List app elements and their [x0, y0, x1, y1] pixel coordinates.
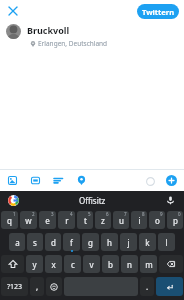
staticText: .	[146, 281, 149, 292]
button[interactable]: v	[83, 255, 100, 273]
staticText: 2	[32, 211, 35, 217]
staticText: 8	[142, 211, 145, 217]
button[interactable]: e	[39, 211, 56, 229]
staticText: g	[88, 237, 93, 248]
button[interactable]: q	[1, 211, 18, 229]
button[interactable]: n	[121, 255, 138, 273]
staticText: z	[101, 215, 105, 226]
staticText: Bruckvoll	[27, 24, 70, 36]
staticText: a	[15, 237, 20, 248]
staticText: v	[89, 259, 94, 270]
button[interactable]: h	[101, 233, 118, 251]
button[interactable]: Google	[7, 194, 19, 206]
staticText: 9	[160, 211, 163, 217]
button[interactable]: ,	[30, 277, 44, 296]
staticText: e	[45, 215, 50, 226]
staticText: f	[70, 237, 73, 248]
staticText: j	[127, 237, 130, 248]
button[interactable]: Add GIF	[29, 174, 42, 187]
button[interactable]: c	[64, 255, 81, 273]
staticText: q	[7, 215, 12, 226]
staticText: o	[155, 215, 160, 226]
staticText: ?123	[7, 282, 23, 292]
staticText: ,	[36, 281, 39, 292]
button[interactable]: Add photo	[6, 174, 19, 187]
staticText: s	[33, 237, 37, 248]
staticText: t	[84, 215, 87, 226]
button[interactable]: Backspace	[159, 255, 183, 273]
button[interactable]: y	[26, 255, 43, 273]
button[interactable]: l	[158, 233, 175, 251]
button[interactable]: Character count	[144, 175, 156, 187]
staticText: k	[145, 237, 150, 248]
button[interactable]: d	[45, 233, 61, 251]
button[interactable]: w	[20, 211, 37, 229]
staticText: Erlangen, Deutschland	[38, 39, 108, 48]
button[interactable]: Twittern	[137, 4, 179, 19]
button[interactable]: Voice input	[164, 194, 176, 206]
staticText: r	[65, 215, 69, 226]
button[interactable]: m	[140, 255, 157, 273]
button[interactable]: Offisitz	[79, 195, 106, 206]
button[interactable]: .	[140, 277, 154, 296]
button[interactable]: t	[77, 211, 93, 229]
button[interactable]: g	[82, 233, 99, 251]
button[interactable]: Shift	[1, 255, 24, 273]
staticText: c	[71, 259, 75, 270]
staticText: 6	[106, 211, 109, 217]
staticText: u	[119, 215, 124, 226]
button[interactable]: z	[95, 211, 111, 229]
staticText: 4	[70, 211, 73, 217]
button[interactable]: u	[113, 211, 129, 229]
staticText: 3	[51, 211, 54, 217]
staticText: d	[51, 237, 56, 248]
staticText: 5	[88, 211, 91, 217]
staticText: Twittern	[142, 7, 175, 17]
staticText: 7	[124, 211, 127, 217]
button[interactable]: Enter	[156, 277, 183, 296]
button[interactable]: b	[102, 255, 119, 273]
staticText: i	[138, 215, 141, 226]
button[interactable]: x	[45, 255, 62, 273]
staticText: h	[107, 237, 112, 248]
staticText: l	[165, 237, 168, 248]
staticText: y	[32, 259, 37, 270]
button[interactable]: ?123	[1, 277, 28, 296]
staticText: b	[108, 259, 113, 270]
staticText: n	[127, 259, 132, 270]
button[interactable]: a	[9, 233, 25, 251]
staticText: m	[145, 259, 153, 270]
staticText: p	[173, 215, 178, 226]
button[interactable]: Add tweet	[165, 174, 178, 187]
button[interactable]: i	[131, 211, 147, 229]
button[interactable]: p	[167, 211, 183, 229]
button[interactable]: r	[58, 211, 75, 229]
staticText: w	[25, 215, 32, 226]
button[interactable]: Close	[5, 3, 21, 19]
button[interactable]: s	[27, 233, 43, 251]
button[interactable]: Create poll	[52, 174, 65, 187]
staticText: 0	[178, 211, 181, 217]
button[interactable]: f	[63, 233, 80, 251]
button[interactable]: k	[139, 233, 156, 251]
button[interactable]: Add location	[75, 174, 88, 187]
staticText: 1	[13, 211, 16, 217]
button[interactable]: o	[149, 211, 165, 229]
button[interactable]: j	[120, 233, 137, 251]
staticText: x	[51, 259, 56, 270]
button[interactable]: Emoji	[46, 277, 62, 296]
